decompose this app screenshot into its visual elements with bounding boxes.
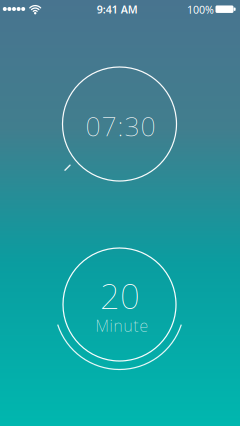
staticText: 20 — [100, 272, 140, 318]
button[interactable]: 20 Minute — [44, 229, 194, 379]
staticText: 9:41 AM — [97, 2, 138, 16]
staticText: 07:30 — [85, 108, 155, 144]
staticText: Minute — [95, 315, 148, 336]
staticText: 100% — [187, 2, 214, 17]
button[interactable]: Alarm time 07:30 — [44, 49, 194, 199]
